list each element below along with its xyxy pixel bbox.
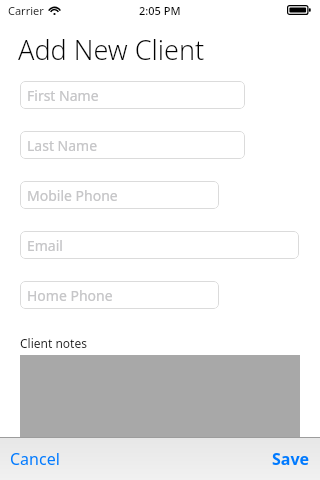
staticText: Last Name — [27, 136, 98, 155]
staticText: Carrier — [8, 3, 44, 18]
button[interactable]: Home Phone — [20, 281, 219, 309]
staticText: Cancel — [10, 448, 60, 470]
staticText: Mobile Phone — [27, 186, 118, 205]
button[interactable]: Email — [20, 231, 299, 259]
button[interactable]: Mobile Phone — [20, 181, 219, 209]
button[interactable] — [20, 355, 300, 441]
staticText: Home Phone — [27, 286, 113, 305]
staticText: Add New Client — [18, 31, 205, 68]
button[interactable]: First Name — [20, 81, 245, 109]
button[interactable]: Cancel — [0, 438, 70, 480]
staticText: Email — [27, 236, 63, 255]
staticText: Client notes — [20, 335, 87, 351]
staticText: 2:05 PM — [139, 3, 181, 18]
button[interactable]: Save — [262, 438, 320, 480]
staticText: Save — [272, 448, 310, 470]
button[interactable]: Last Name — [20, 131, 245, 159]
staticText: First Name — [27, 86, 99, 105]
